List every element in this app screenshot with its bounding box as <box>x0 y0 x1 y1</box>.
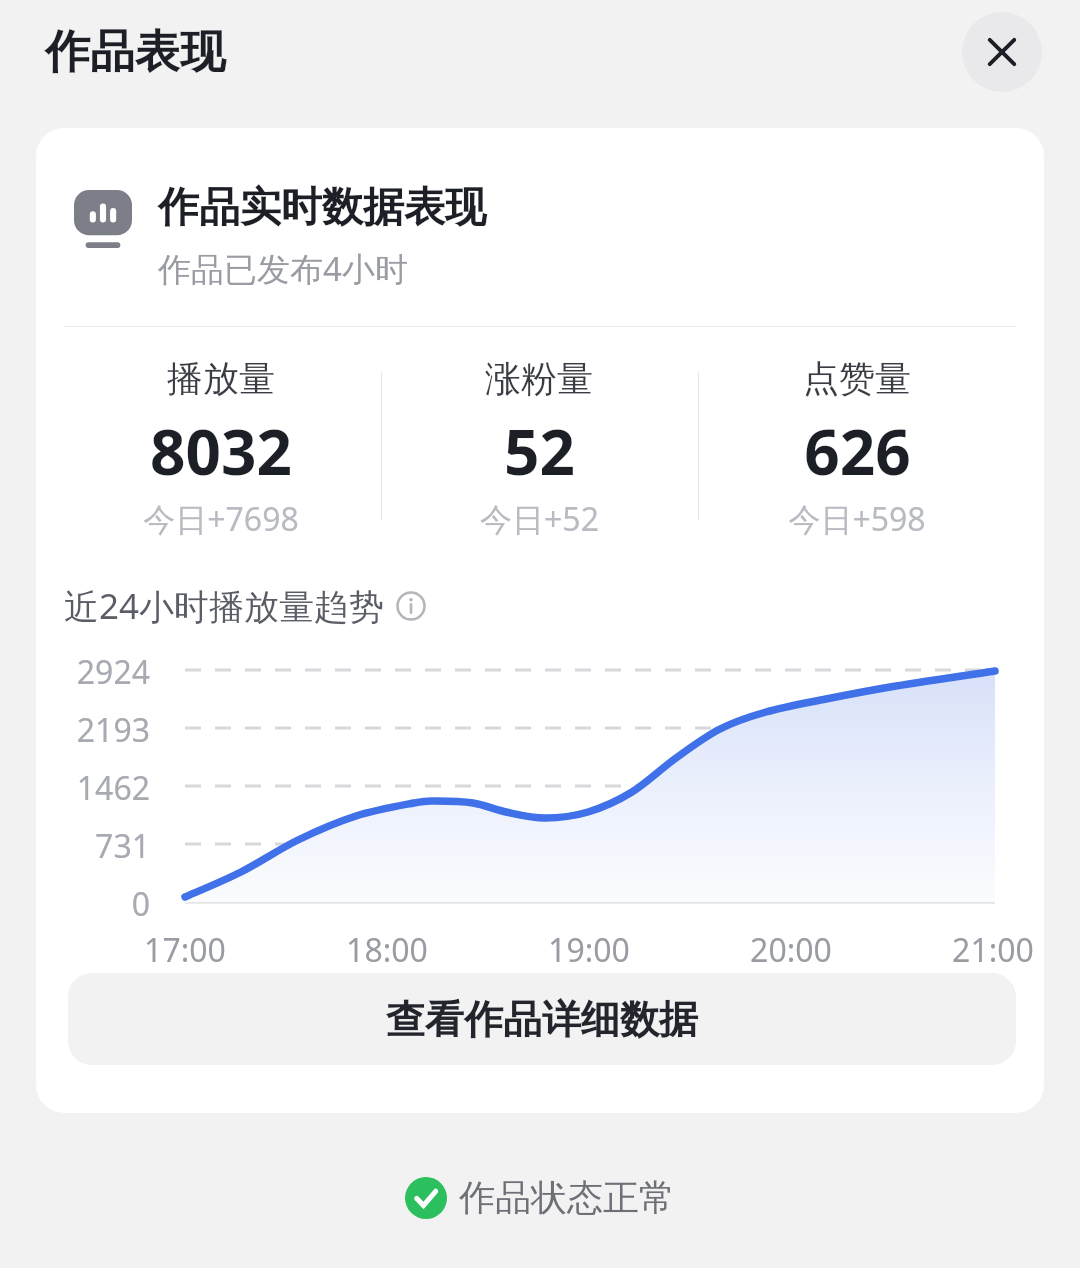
staticText: 731 <box>36 824 150 868</box>
staticText: 查看作品详细数据 <box>386 995 698 1044</box>
button[interactable]: 涨粉量 <box>380 356 698 541</box>
button[interactable]: 播放量 <box>62 356 380 541</box>
button[interactable]: 关闭 <box>962 12 1042 92</box>
staticText: 点赞量 <box>803 356 911 401</box>
staticText: 21:00 <box>913 928 1044 972</box>
staticText: 626 <box>804 409 911 493</box>
staticText: 今日+7698 <box>143 497 299 541</box>
staticText: 近24小时播放量趋势 <box>64 582 385 630</box>
button[interactable]: 查看作品详细数据 <box>68 973 1016 1065</box>
staticText: 0 <box>36 882 150 926</box>
staticText: 52 <box>504 409 575 493</box>
staticText: 19:00 <box>509 928 669 972</box>
staticText: 2924 <box>36 650 150 694</box>
staticText: 涨粉量 <box>485 356 593 401</box>
staticText: 18:00 <box>307 928 467 972</box>
button[interactable]: 说明 <box>395 590 427 622</box>
staticText: 17:00 <box>105 928 265 972</box>
staticText: 作品已发布4小时 <box>158 246 408 291</box>
button[interactable]: 点赞量 <box>698 356 1016 541</box>
staticText: 20:00 <box>711 928 871 972</box>
staticText: 作品状态正常 <box>459 1175 675 1220</box>
staticText: 作品表现 <box>45 24 225 81</box>
staticText: 2193 <box>36 708 150 752</box>
staticText: 8032 <box>150 409 292 493</box>
staticText: 作品实时数据表现 <box>158 182 486 234</box>
staticText: 播放量 <box>167 356 275 401</box>
staticText: 今日+52 <box>480 497 599 541</box>
staticText: 今日+598 <box>788 497 926 541</box>
staticText: 1462 <box>36 766 150 810</box>
